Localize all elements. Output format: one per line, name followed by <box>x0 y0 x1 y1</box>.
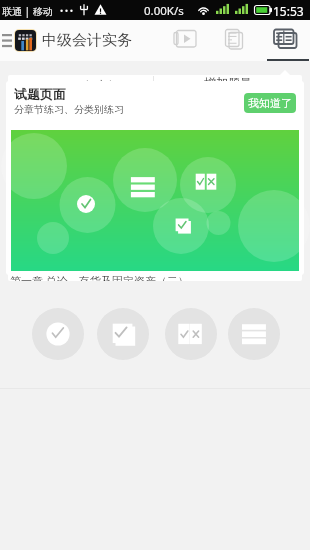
button[interactable]: Notes <box>210 20 260 61</box>
staticText: 联通 | 移动 <box>2 4 53 18</box>
button[interactable]: 我知道了 <box>244 93 296 113</box>
staticText: 中级会计实务 <box>42 31 132 50</box>
button[interactable]: Daily practice <box>32 308 84 360</box>
staticText: 试题页面 <box>14 86 66 102</box>
staticText: 我知道了 <box>248 96 292 110</box>
staticText: 第一章 总论、存货及固定资产（二） <box>10 273 189 281</box>
staticText: 分章节练习、分类别练习 <box>14 103 124 116</box>
staticText: 2019年大纲 <box>56 77 120 93</box>
button[interactable]: App icon <box>15 30 36 51</box>
staticText: 15:53 <box>273 3 304 19</box>
button[interactable]: Menu <box>0 20 14 61</box>
button[interactable]: Chapter practice <box>97 308 149 360</box>
button[interactable]: True or false <box>165 308 217 360</box>
button[interactable]: Exercises <box>260 20 310 61</box>
staticText: 0.00K/s <box>144 3 184 19</box>
staticText: 增加题量 <box>204 75 252 90</box>
button[interactable]: Videos <box>160 20 210 61</box>
button[interactable]: Question list <box>228 308 280 360</box>
